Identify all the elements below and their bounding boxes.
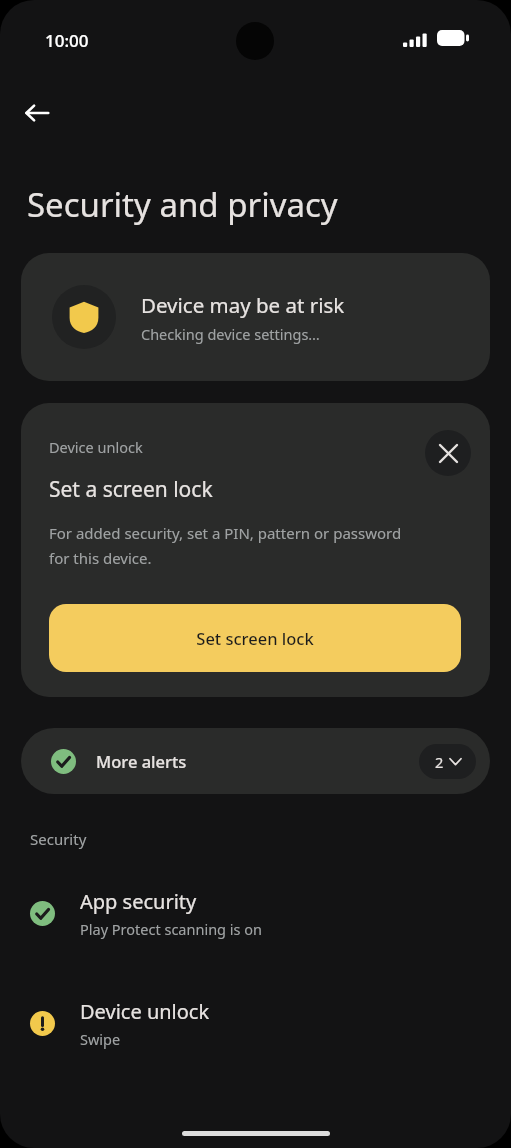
- staticText: Play Protect scanning is on: [80, 919, 262, 939]
- staticText: 2: [435, 752, 444, 772]
- button[interactable]: Dismiss: [425, 430, 471, 476]
- staticText: Security: [30, 829, 87, 849]
- staticText: Security and privacy: [27, 182, 338, 227]
- button[interactable]: Back: [14, 90, 60, 136]
- staticText: 10:00: [45, 29, 89, 52]
- staticText: Checking device settings…: [141, 324, 320, 344]
- staticText: Swipe: [80, 1029, 121, 1049]
- button[interactable]: Device unlock: [0, 986, 511, 1060]
- staticText: Set screen lock: [196, 627, 314, 649]
- button[interactable]: Device may be at risk: [21, 253, 490, 381]
- staticText: Device unlock: [80, 998, 210, 1025]
- staticText: Set a screen lock: [49, 475, 213, 504]
- staticText: More alerts: [96, 750, 187, 772]
- staticText: Device may be at risk: [141, 291, 345, 319]
- button[interactable]: 2: [419, 744, 476, 779]
- button[interactable]: App security: [0, 876, 511, 950]
- staticText: For added security, set a PIN, pattern o…: [49, 523, 402, 568]
- button[interactable]: More alerts: [21, 728, 490, 794]
- staticText: App security: [80, 888, 197, 915]
- button[interactable]: Set screen lock: [49, 604, 461, 672]
- staticText: Device unlock: [49, 437, 143, 457]
